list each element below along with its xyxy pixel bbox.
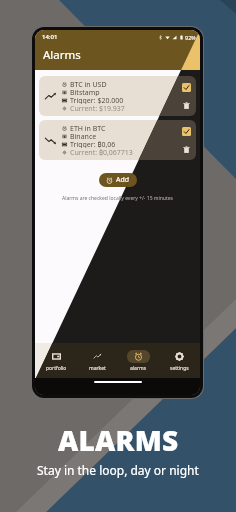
button[interactable]: Add xyxy=(99,173,137,187)
button[interactable]: ETH in BTC xyxy=(39,120,196,160)
staticText: ETH in BTC xyxy=(70,124,106,132)
staticText: Alarms xyxy=(43,47,81,63)
button[interactable]: market xyxy=(77,350,118,372)
staticText: market xyxy=(89,365,106,372)
staticText: ETH in BTC xyxy=(70,124,106,132)
button[interactable]: ETH in BTC xyxy=(39,120,196,160)
staticText: Current: ₿0,067713 xyxy=(70,148,133,156)
staticText: BTC in USD xyxy=(70,80,107,88)
staticText: market xyxy=(89,365,106,372)
staticText: settings xyxy=(170,365,189,372)
staticText: Binance xyxy=(70,132,97,140)
button[interactable]: settings xyxy=(159,350,200,372)
staticText: Current: $19.937 xyxy=(70,104,125,112)
staticText: alarms xyxy=(130,365,147,372)
staticText: ALARMS xyxy=(58,421,179,459)
staticText: Add xyxy=(116,175,130,185)
staticText: Trigger: $20.000 xyxy=(70,96,124,104)
staticText: Alarms xyxy=(43,47,81,63)
button[interactable]: Toggle alarm xyxy=(182,127,191,136)
staticText: Bitstamp xyxy=(70,88,100,96)
staticText: Bitstamp xyxy=(70,88,100,96)
button[interactable]: alarms xyxy=(118,350,159,372)
staticText: BTC in USD xyxy=(70,80,107,88)
staticText: 14:01 xyxy=(42,33,58,41)
staticText: Add xyxy=(116,175,130,185)
button[interactable]: Toggle alarm xyxy=(182,83,191,92)
staticText: Alarms are checked locally every +/- 15 … xyxy=(62,195,173,202)
button[interactable]: portfolio xyxy=(35,350,77,372)
button[interactable]: Delete alarm xyxy=(182,145,191,154)
staticText: Current: ₿0,067713 xyxy=(70,148,133,156)
button[interactable]: Delete alarm xyxy=(182,145,191,154)
staticText: 92% xyxy=(185,34,196,41)
button[interactable]: settings xyxy=(159,350,200,372)
staticText: Current: $19.937 xyxy=(70,104,125,112)
staticText: settings xyxy=(170,365,189,372)
staticText: portfolio xyxy=(46,365,67,372)
staticText: portfolio xyxy=(46,365,67,372)
button[interactable]: portfolio xyxy=(35,350,77,372)
button[interactable]: alarms xyxy=(118,350,159,372)
staticText: Binance xyxy=(70,132,97,140)
button[interactable]: Add xyxy=(99,173,137,187)
staticText: Trigger: ₿0,06 xyxy=(70,140,116,148)
button[interactable]: BTC in USD xyxy=(39,76,196,116)
staticText: 14:01 xyxy=(42,33,58,41)
staticText: Trigger: ₿0,06 xyxy=(70,140,116,148)
staticText: Stay in the loop, day or night xyxy=(37,462,199,478)
staticText: Alarms are checked locally every +/- 15 … xyxy=(62,195,173,202)
button[interactable]: market xyxy=(77,350,118,372)
button[interactable]: Toggle alarm xyxy=(182,83,191,92)
staticText: 92% xyxy=(185,34,196,41)
staticText: Trigger: $20.000 xyxy=(70,96,124,104)
button[interactable]: Delete alarm xyxy=(182,101,191,110)
staticText: alarms xyxy=(130,365,147,372)
button[interactable]: Delete alarm xyxy=(182,101,191,110)
button[interactable]: BTC in USD xyxy=(39,76,196,116)
button[interactable]: Toggle alarm xyxy=(182,127,191,136)
